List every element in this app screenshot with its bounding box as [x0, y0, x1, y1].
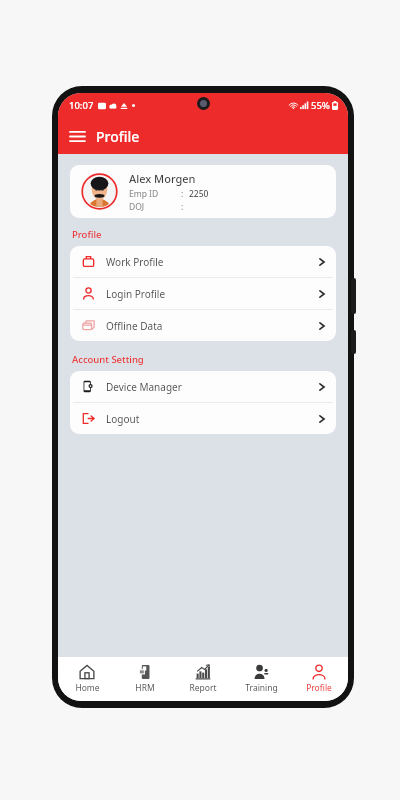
staticText: Login Profile	[106, 287, 166, 301]
button[interactable]: HRM	[116, 657, 174, 701]
staticText: Alex Morgen	[129, 171, 196, 186]
staticText: :	[181, 201, 184, 213]
staticText: Report	[189, 682, 217, 694]
staticText: Offline Data	[106, 319, 163, 333]
button[interactable]: Home	[58, 657, 116, 701]
button[interactable]: Work Profile	[70, 246, 336, 277]
button[interactable]: Open navigation menu	[63, 122, 91, 150]
staticText: HRM	[135, 682, 155, 694]
button[interactable]: Device Manager	[70, 371, 336, 402]
staticText: 10:07	[69, 99, 94, 112]
button[interactable]: Profile	[290, 657, 348, 701]
staticText: Account Setting	[72, 353, 144, 366]
staticText: Profile	[96, 127, 140, 146]
staticText: :	[181, 188, 184, 200]
staticText: Profile	[72, 228, 102, 241]
staticText: Training	[245, 682, 278, 694]
staticText: Device Manager	[106, 380, 182, 394]
button[interactable]: Report	[174, 657, 232, 701]
button[interactable]: Logout	[70, 403, 336, 434]
staticText: 2250	[189, 188, 209, 200]
button[interactable]: Login Profile	[70, 278, 336, 309]
staticText: DOJ	[129, 201, 145, 213]
staticText: Logout	[106, 412, 140, 426]
button[interactable]: Training	[232, 657, 290, 701]
staticText: Profile	[306, 682, 332, 694]
staticText: Emp ID	[129, 188, 159, 200]
staticText: Work Profile	[106, 255, 164, 269]
button[interactable]: Alex Morgen	[70, 165, 336, 218]
staticText: 55%	[311, 99, 330, 112]
staticText: Home	[75, 682, 100, 694]
button[interactable]: Offline Data	[70, 310, 336, 341]
